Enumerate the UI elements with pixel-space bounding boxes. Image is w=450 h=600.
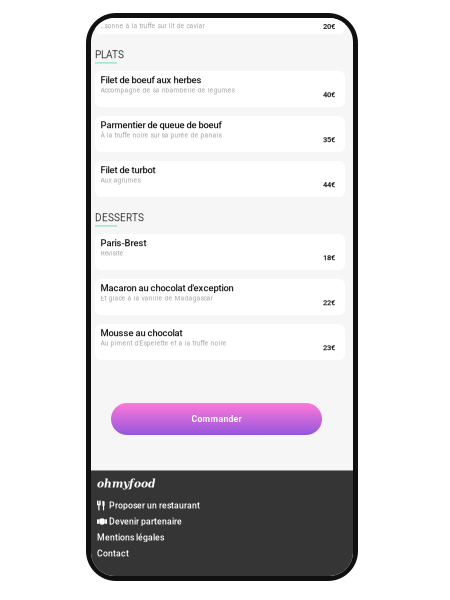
staticText: Mentions légales (97, 532, 164, 543)
staticText: Filet de turbot (100, 164, 155, 175)
button[interactable]: Mentions légales (97, 531, 347, 544)
button[interactable]: Contact (97, 547, 347, 560)
staticText: Paris-Brest (100, 237, 146, 248)
staticText: ohmyfood (97, 477, 155, 490)
button[interactable]: Filet de turbot (95, 161, 345, 197)
staticText: 35€ (323, 135, 335, 144)
button[interactable]: Proposer un restaurant (97, 499, 347, 512)
staticText: Macaron au chocolat d'exception (100, 282, 233, 293)
staticText: 40€ (323, 90, 335, 99)
staticText: 20€ (323, 22, 335, 31)
staticText: 22€ (323, 298, 335, 307)
button[interactable]: Paris-Brest (95, 234, 345, 270)
button[interactable]: Parmentier de queue de boeuf (95, 116, 345, 152)
staticText: 23€ (323, 343, 335, 352)
staticText: Mousse au chocolat (100, 327, 182, 338)
staticText: Revisité (100, 249, 123, 257)
staticText: Accompagné de sa ribambelle de légumes (100, 86, 234, 94)
staticText: PLATS (95, 49, 124, 61)
button[interactable]: Devenir partenaire (97, 515, 347, 528)
staticText: DESSERTS (95, 212, 144, 224)
staticText: …sonne à la truffe sur lit de caviar (100, 22, 204, 30)
staticText: Parmentier de queue de boeuf (100, 119, 221, 130)
button[interactable]: Commander (111, 403, 322, 435)
staticText: Devenir partenaire (109, 516, 182, 527)
staticText: 18€ (323, 253, 335, 262)
staticText: 44€ (323, 180, 335, 189)
button[interactable]: Macaron au chocolat d'exception (95, 279, 345, 315)
staticText: Proposer un restaurant (109, 500, 200, 511)
staticText: Et glace à la vanille de Madagascar (100, 294, 212, 302)
staticText: Contact (97, 548, 129, 559)
staticText: Commander (191, 414, 241, 424)
button[interactable]: Filet de boeuf aux herbes (95, 71, 345, 107)
button[interactable]: Mousse au chocolat (95, 324, 345, 360)
staticText: Au piment d'Espelette et à la truffe noi… (100, 339, 226, 347)
staticText: Aux agrumes (100, 176, 140, 184)
staticText: À la truffe noire sur sa purée de panais (100, 131, 221, 139)
staticText: Filet de boeuf aux herbes (100, 74, 201, 85)
